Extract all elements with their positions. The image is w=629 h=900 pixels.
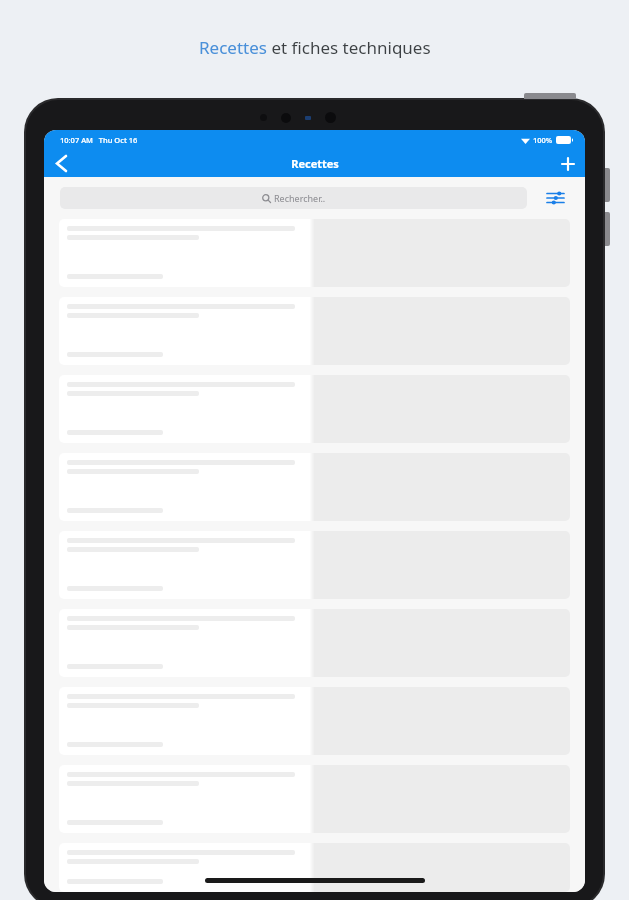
staticText: Recettes	[199, 36, 267, 59]
button[interactable]: Rechercher..	[60, 187, 527, 209]
staticText: et fiches techniques	[267, 36, 431, 59]
button[interactable]	[59, 687, 570, 755]
button[interactable]	[59, 609, 570, 677]
button[interactable]	[59, 453, 570, 521]
staticText: Recettes	[291, 156, 339, 171]
staticText: 10:07 AM Thu Oct 16	[60, 135, 138, 145]
button[interactable]: Filter	[541, 184, 569, 212]
button[interactable]	[59, 297, 570, 365]
button[interactable]	[59, 219, 570, 287]
button[interactable]	[59, 531, 570, 599]
button[interactable]	[59, 765, 570, 833]
staticText: Rechercher..	[274, 192, 326, 204]
button[interactable]: Add recipe	[551, 150, 585, 177]
button[interactable]	[59, 375, 570, 443]
staticText: 100%	[533, 135, 553, 145]
button[interactable]: Back	[44, 150, 78, 177]
button[interactable]	[59, 843, 570, 892]
